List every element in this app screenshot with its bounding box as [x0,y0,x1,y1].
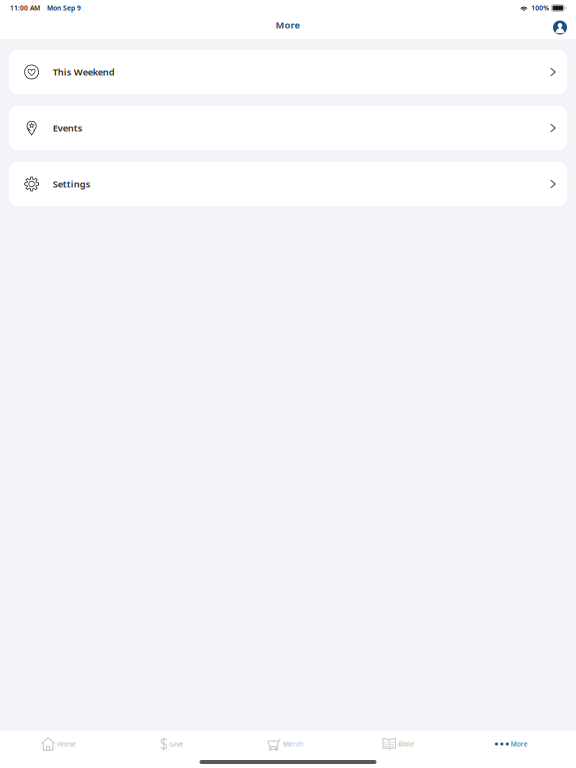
button[interactable]: Bible [342,732,455,756]
button[interactable]: Events [9,106,567,150]
button[interactable]: Give [115,732,228,756]
staticText: 100% [531,4,549,12]
staticText: 11:00 AM [10,4,40,12]
staticText: Home [57,740,76,748]
button[interactable]: Merch [228,732,342,756]
button[interactable]: Settings [9,162,567,206]
button[interactable]: More [455,732,568,756]
button[interactable]: Account [547,16,573,38]
button[interactable]: This Weekend [9,50,567,94]
staticText: Merch [283,740,303,748]
staticText: This Weekend [53,66,115,78]
staticText: More [511,740,528,748]
staticText: Give [169,740,183,748]
button[interactable]: Home [2,732,115,756]
staticText: Events [53,122,83,134]
staticText: Bible [398,740,414,748]
staticText: More [275,19,300,31]
staticText: Mon Sep 9 [47,4,81,12]
staticText: Settings [53,178,91,190]
